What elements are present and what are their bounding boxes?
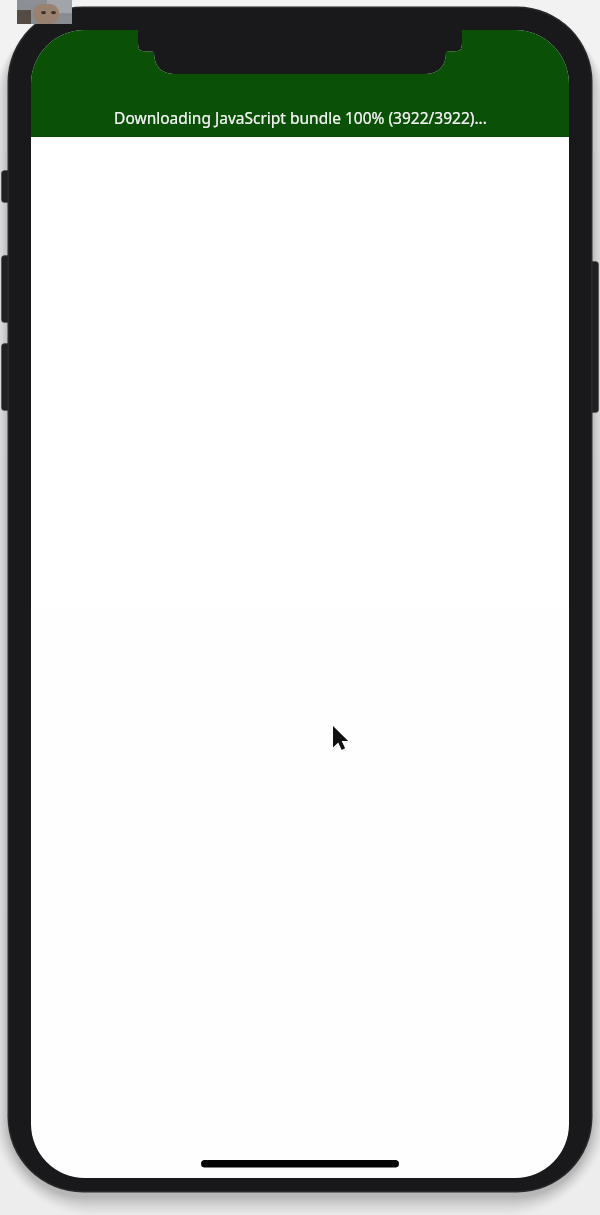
button[interactable]: Downloading JavaScript bundle 100% (3922… <box>0 0 600 1215</box>
button[interactable]: Downloading JavaScript bundle progress <box>31 30 569 137</box>
staticText: Downloading JavaScript bundle 100% (3922… <box>114 107 487 128</box>
button[interactable]: Home indicator <box>201 1150 399 1178</box>
